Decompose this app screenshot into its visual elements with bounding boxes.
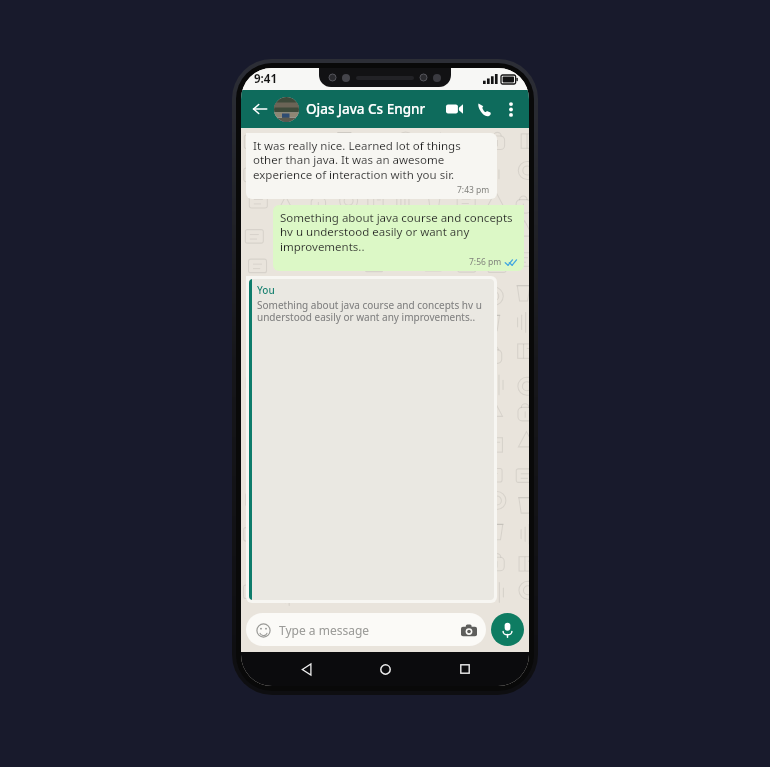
button[interactable]: Something about java course and concepts… [273,205,524,271]
staticText: 9:41 [254,71,277,87]
staticText: It was really nice. Learned lot of thing… [253,138,490,183]
button[interactable]: Back [247,96,273,122]
button[interactable]: Home [370,654,400,684]
button[interactable]: Video call [439,94,469,124]
staticText: You [257,283,275,297]
staticText: 7:56 pm [469,256,502,268]
button[interactable]: Record voice message [491,613,524,646]
staticText: Something about java course and concepts… [280,210,517,255]
button[interactable]: Contact photo [274,97,299,122]
button[interactable]: You [246,276,497,603]
button[interactable]: Voice call [469,94,499,124]
button[interactable]: More options [499,97,523,121]
button[interactable]: It was really nice. Learned lot of thing… [246,133,497,199]
staticText: 7:43 pm [457,184,490,196]
button[interactable]: Camera [460,621,478,639]
button[interactable]: Emoji [254,621,272,639]
button[interactable]: Recent apps [450,654,480,684]
staticText: Something about java course and concepts… [257,298,488,324]
staticText: Ojas Java Cs Engnr [306,100,426,118]
staticText: Type a message [279,622,460,638]
button[interactable]: Emoji [246,613,486,646]
button[interactable]: Back [291,654,321,684]
button[interactable]: Ojas Java Cs Engnr [306,100,439,118]
